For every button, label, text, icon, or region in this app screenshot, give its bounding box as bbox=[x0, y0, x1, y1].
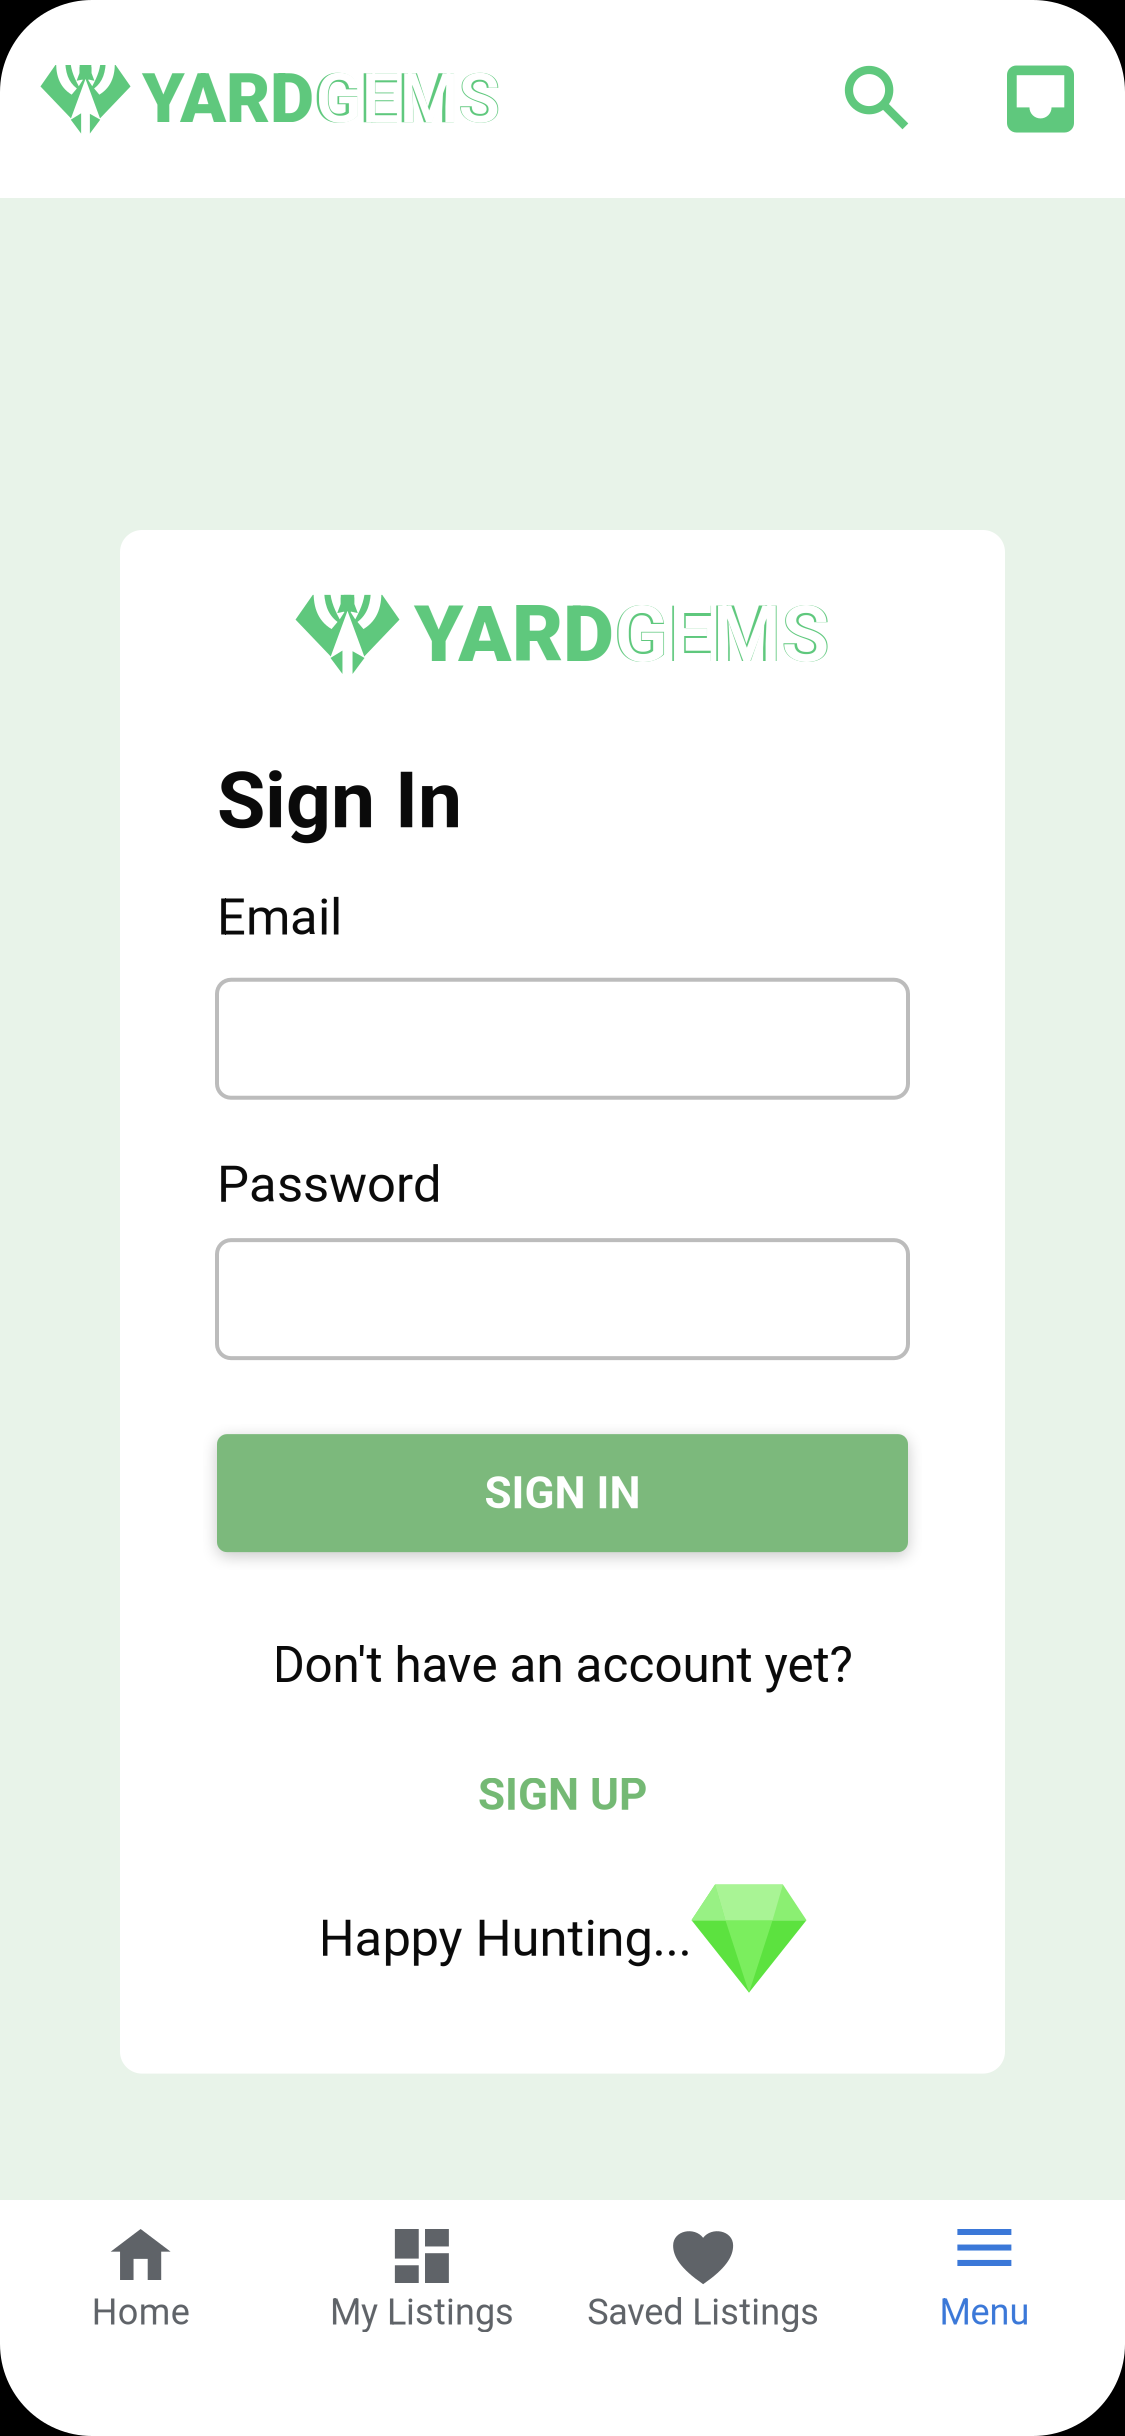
staticText: YARD bbox=[142, 59, 314, 139]
staticText: My Listings bbox=[330, 2291, 514, 2333]
staticText: GEMS bbox=[314, 59, 501, 139]
staticText: SIGN UP bbox=[478, 1769, 647, 1820]
staticText: Don't have an account yet? bbox=[272, 1636, 852, 1694]
button[interactable]: Search bbox=[845, 66, 911, 132]
staticText: Saved Listings bbox=[587, 2291, 819, 2333]
staticText: Sign In bbox=[217, 754, 462, 846]
staticText: GEMS bbox=[315, 59, 499, 139]
button[interactable]: Messages bbox=[1007, 65, 1074, 132]
staticText: YARD bbox=[414, 588, 614, 680]
button[interactable]: My Listings bbox=[281, 2229, 562, 2333]
staticText: Menu bbox=[939, 2291, 1029, 2333]
staticText: Home bbox=[92, 2291, 190, 2333]
staticText: GEMS bbox=[614, 588, 830, 680]
button[interactable]: Home bbox=[0, 2229, 281, 2333]
staticText: Email bbox=[217, 887, 342, 947]
button[interactable]: SIGN IN bbox=[217, 1434, 908, 1552]
staticText: GEMS bbox=[614, 588, 829, 680]
staticText: SIGN IN bbox=[484, 1467, 640, 1519]
staticText: Password bbox=[217, 1155, 442, 1214]
button[interactable]: SIGN UP bbox=[217, 1769, 908, 1820]
staticText: Happy Hunting... bbox=[318, 1909, 691, 1968]
button[interactable]: Saved Listings bbox=[562, 2229, 844, 2333]
button[interactable]: Menu bbox=[844, 2229, 1125, 2333]
